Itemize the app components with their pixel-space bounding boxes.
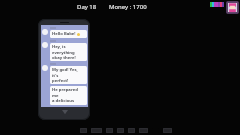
staticText: Hello Babe! xyxy=(52,31,76,37)
staticText: Hey, is everything okay there! xyxy=(52,44,85,60)
button[interactable]: Hey, is everything okay there! xyxy=(50,43,87,61)
button[interactable]: Toolbar action 1 xyxy=(80,128,87,133)
button[interactable]: Toolbar action 2 xyxy=(91,128,102,133)
button[interactable]: Toolbar action 6 xyxy=(139,128,148,133)
staticText: Money : 1700 xyxy=(109,3,147,11)
button[interactable]: Contact avatar xyxy=(42,65,48,71)
button[interactable]: Contact avatar xyxy=(42,29,48,35)
staticText: My god! Yes, it's perfect! xyxy=(52,67,85,83)
button[interactable]: Toolbar action 8 xyxy=(163,128,172,133)
button[interactable]: Hello Babe! xyxy=(50,30,87,38)
staticText: Day 18 xyxy=(77,3,97,11)
button[interactable]: Character portrait xyxy=(226,1,239,14)
button[interactable]: Toolbar action 4 xyxy=(117,128,124,133)
button[interactable]: He prepared me a delicious meal, look xyxy=(50,86,87,105)
button[interactable]: Toolbar action 5 xyxy=(128,128,135,133)
button[interactable]: Contact avatar xyxy=(42,42,48,48)
button[interactable]: Toolbar action 3 xyxy=(106,128,113,133)
button[interactable]: My god! Yes, it's perfect! xyxy=(50,66,87,84)
staticText: He prepared me a delicious meal, look xyxy=(52,87,85,104)
button[interactable]: Home xyxy=(60,107,69,116)
